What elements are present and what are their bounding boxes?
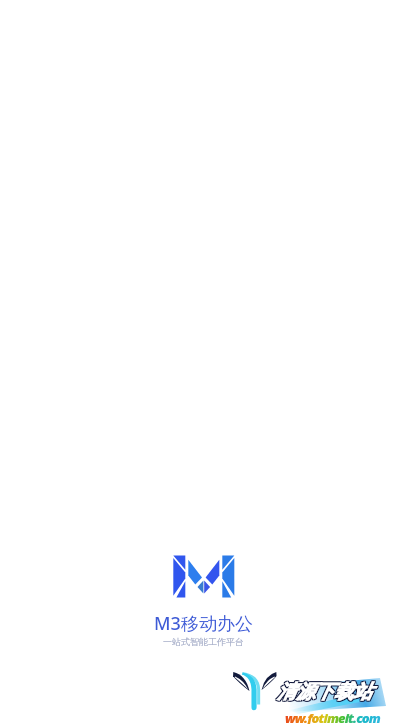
staticText: 清源下载站 [278,679,373,703]
staticText: 清源下载站 [277,681,372,705]
staticText: 清源下载站 [278,680,373,704]
staticText: 清源下载站 [278,681,373,705]
staticText: 一站式智能工作平台 [163,636,244,647]
staticText: 清源下载站 [277,680,372,704]
staticText: 清源下载站 [276,679,371,703]
staticText: 清源下载站 [276,681,371,705]
staticText: 清源下载站 [276,680,371,704]
staticText: ww.fotimeit.com [285,709,380,724]
staticText: M3移动办公 [154,611,253,636]
staticText: 清源下载站 [277,679,372,703]
